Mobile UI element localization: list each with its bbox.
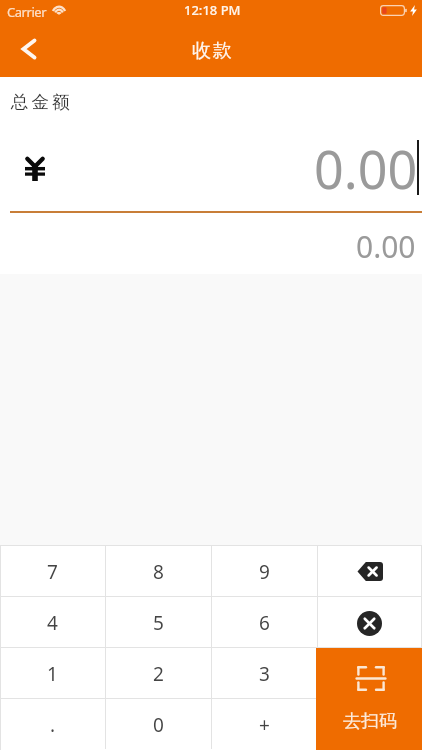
staticText: Carrier — [7, 3, 47, 21]
button[interactable]: 9 — [212, 546, 317, 596]
staticText: 12:18 PM — [184, 1, 241, 19]
staticText: . — [50, 712, 56, 738]
button[interactable]: 7 — [0, 546, 105, 596]
button[interactable]: + — [212, 699, 317, 749]
staticText: 4 — [47, 610, 58, 636]
staticText: 6 — [259, 610, 270, 636]
button[interactable]: 3 — [212, 648, 317, 698]
staticText: 7 — [47, 559, 58, 585]
button[interactable]: Amount input — [0, 117, 422, 213]
button[interactable]: Clear — [318, 597, 422, 647]
button[interactable]: 4 — [0, 597, 105, 647]
button[interactable]: 6 — [212, 597, 317, 647]
button[interactable]: 2 — [106, 648, 211, 698]
staticText: 去扫码 — [343, 710, 397, 733]
button[interactable]: . — [0, 699, 105, 749]
staticText: 2 — [153, 661, 164, 687]
staticText: 8 — [153, 559, 164, 585]
button[interactable]: 8 — [106, 546, 211, 596]
staticText: 收款 — [192, 39, 234, 63]
staticText: 0 — [153, 712, 164, 738]
staticText: 1 — [47, 661, 58, 687]
staticText: 5 — [153, 610, 164, 636]
button[interactable]: 1 — [0, 648, 105, 698]
staticText: 0.00 — [314, 133, 418, 204]
staticText: + — [259, 712, 270, 738]
button[interactable]: 5 — [106, 597, 211, 647]
button[interactable]: Backspace — [318, 546, 422, 596]
staticText: 0.00 — [356, 226, 416, 267]
staticText: 9 — [259, 559, 270, 585]
staticText: 总金额 — [11, 91, 73, 113]
button[interactable]: Scan QR code — [316, 648, 422, 750]
button[interactable]: Back — [3, 23, 55, 75]
staticText: 3 — [259, 661, 270, 687]
button[interactable]: 0 — [106, 699, 211, 749]
